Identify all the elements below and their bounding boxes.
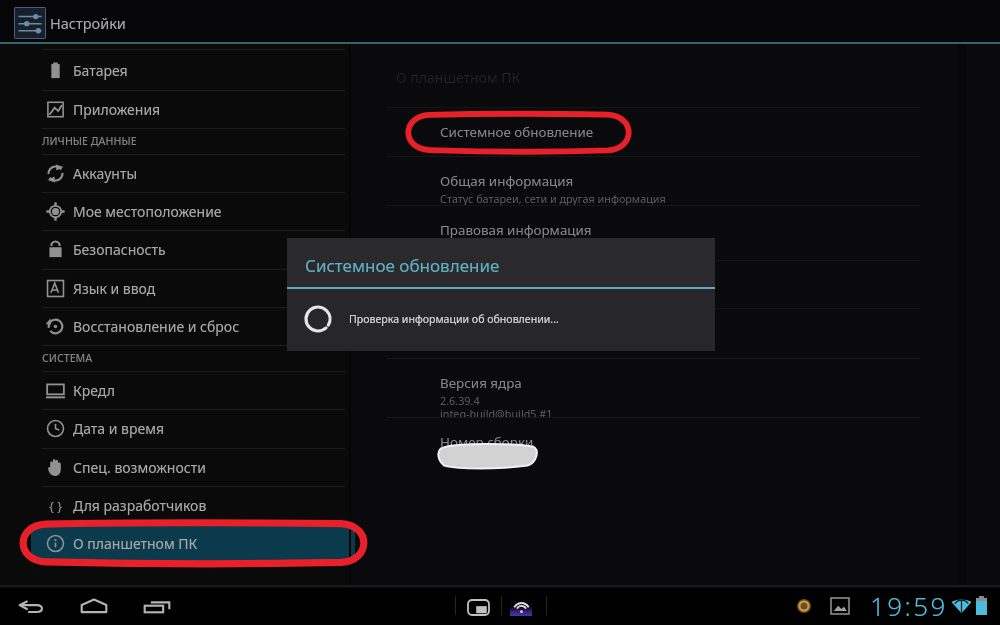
staticText: Системное обновление xyxy=(440,123,594,141)
staticText: Спец. возможности xyxy=(73,458,206,477)
staticText: Настройки xyxy=(50,13,126,33)
staticText: О планшетном ПК xyxy=(396,68,521,87)
staticText: Статус батареи, сети и другая информация xyxy=(440,191,666,205)
button[interactable]: Аккаунты xyxy=(0,154,350,192)
button[interactable]: Версия Android xyxy=(387,308,920,358)
button[interactable]: Правовая информация xyxy=(387,205,920,260)
button[interactable]: Настройки xyxy=(0,2,1000,44)
staticText: Кредл xyxy=(73,381,115,400)
button[interactable]: Мое местоположение xyxy=(0,192,350,230)
button[interactable]: Recent apps xyxy=(135,594,179,621)
button[interactable]: Восстановление и сброс xyxy=(0,307,350,345)
button[interactable]: Спец. возможности xyxy=(0,448,350,486)
staticText: Мое местоположение xyxy=(73,202,222,221)
staticText: Модель xyxy=(440,276,491,294)
staticText: Восстановление и сброс xyxy=(73,317,240,336)
button[interactable]: О планшетном ПК xyxy=(31,524,355,562)
button[interactable]: Home xyxy=(72,591,116,621)
staticText: { } xyxy=(49,497,63,515)
staticText: О планшетном ПК xyxy=(73,534,198,553)
button[interactable]: Батарея xyxy=(0,51,350,89)
button[interactable]: Back xyxy=(10,594,52,621)
button[interactable]: { } xyxy=(0,486,350,524)
button[interactable]: Кредл xyxy=(0,371,350,409)
button[interactable]: Wi-Fi xyxy=(504,592,539,622)
staticText: Версия ядра xyxy=(440,374,522,392)
staticText: 2.6.39.4 integ-build@build5 #1 xyxy=(440,393,553,417)
staticText: Язык и ввод xyxy=(73,279,156,298)
staticText: 19:59 xyxy=(870,588,948,623)
staticText: Дата и время xyxy=(73,419,165,438)
staticText: Правовая информация xyxy=(440,221,592,239)
button[interactable]: Дата и время xyxy=(0,409,350,447)
button[interactable]: Screenshot xyxy=(459,593,498,622)
button[interactable]: Версия ядра xyxy=(387,358,920,417)
button[interactable]: Общая информация xyxy=(387,156,920,205)
button[interactable]: Модель xyxy=(387,260,920,308)
staticText: Проверка информации об обновлении... xyxy=(349,312,559,326)
staticText: Батарея xyxy=(73,61,128,80)
staticText: СИСТЕМА xyxy=(42,351,93,365)
staticText: Приложения xyxy=(73,100,161,119)
staticText: ЛИЧНЫЕ ДАННЫЕ xyxy=(42,134,137,148)
button[interactable]: Номер сборки xyxy=(387,417,920,467)
button[interactable]: Системное обновление xyxy=(387,107,920,156)
staticText: Общая информация xyxy=(440,172,574,190)
staticText: Безопасность xyxy=(73,240,166,259)
staticText: Номер сборки xyxy=(440,433,534,451)
button[interactable]: Язык и ввод xyxy=(0,269,350,307)
button[interactable]: Приложения xyxy=(0,90,350,128)
button[interactable]: Безопасность xyxy=(0,230,350,268)
staticText: Системное обновление xyxy=(305,254,500,277)
staticText: Аккаунты xyxy=(73,164,138,183)
staticText: Для разработчиков xyxy=(73,496,207,515)
